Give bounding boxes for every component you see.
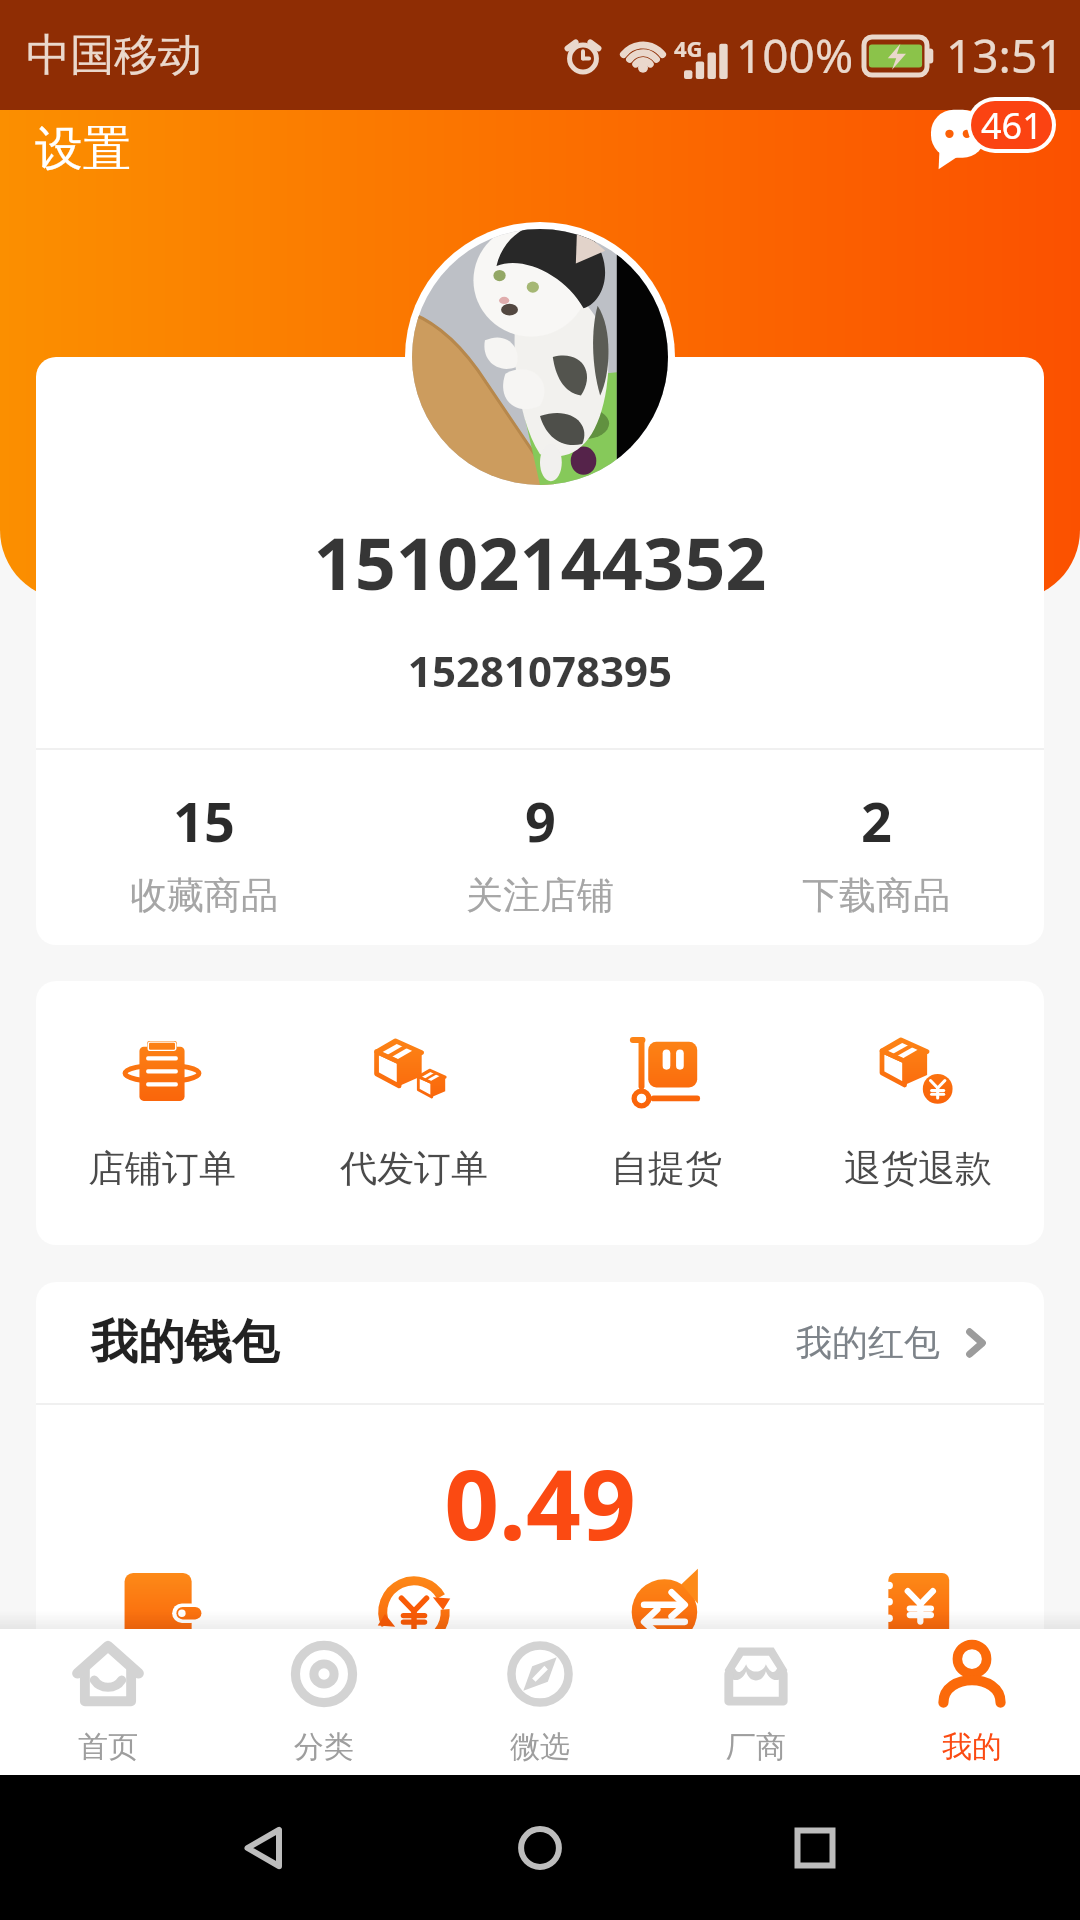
button[interactable]: 店铺订单: [36, 981, 288, 1245]
staticText: 退货退款: [844, 1145, 992, 1192]
staticText: 13:51: [946, 24, 1064, 87]
button[interactable]: 余额: [36, 1573, 288, 1682]
staticText: 中国移动: [26, 28, 202, 83]
staticText: 首页: [78, 1728, 138, 1766]
staticText: 15: [173, 784, 235, 858]
button[interactable]: Recents: [780, 1813, 850, 1883]
button[interactable]: 我的钱包: [36, 1282, 1044, 1403]
staticText: 店铺订单: [88, 1145, 236, 1192]
staticText: 关注店铺: [466, 872, 614, 919]
staticText: 15102144352: [0, 513, 1080, 611]
staticText: 100%: [736, 24, 854, 87]
staticText: 2: [861, 784, 892, 858]
button[interactable]: 代发订单: [288, 981, 540, 1245]
button[interactable]: 分类: [216, 1629, 432, 1775]
staticText: 分类: [294, 1728, 354, 1766]
staticText: 代发订单: [340, 1145, 488, 1192]
button[interactable]: 优惠券: [792, 1573, 1044, 1682]
button[interactable]: 退货退款: [792, 981, 1044, 1245]
button[interactable]: Home: [505, 1813, 575, 1883]
button[interactable]: Profile photo: [405, 222, 675, 492]
button[interactable]: Back: [230, 1813, 300, 1883]
staticText: 我的钱包: [91, 1313, 279, 1372]
button[interactable]: Messages: [931, 89, 1049, 169]
staticText: 4G: [674, 33, 703, 63]
staticText: 15281078395: [0, 642, 1080, 699]
button[interactable]: 微选: [432, 1629, 648, 1775]
button[interactable]: 我的: [864, 1629, 1080, 1775]
button[interactable]: 自提货: [540, 981, 792, 1245]
staticText: 我的: [942, 1728, 1002, 1766]
staticText: 0.49: [36, 1437, 1044, 1568]
button[interactable]: 设置: [0, 110, 139, 187]
staticText: 微选: [510, 1728, 570, 1766]
staticText: 收藏商品: [130, 872, 278, 919]
button[interactable]: 厂商: [648, 1629, 864, 1775]
staticText: 9: [525, 784, 556, 858]
button[interactable]: 2: [708, 750, 1044, 945]
staticText: 下载商品: [802, 872, 950, 919]
button[interactable]: 首页: [0, 1629, 216, 1775]
staticText: 461: [981, 101, 1043, 149]
staticText: 厂商: [726, 1728, 786, 1766]
staticText: 自提货: [611, 1145, 722, 1192]
staticText: 我的红包: [796, 1320, 940, 1365]
button[interactable]: 提现: [288, 1573, 540, 1682]
button[interactable]: 交易明细: [540, 1573, 792, 1682]
button[interactable]: 15: [36, 750, 372, 945]
button[interactable]: 9: [372, 750, 708, 945]
